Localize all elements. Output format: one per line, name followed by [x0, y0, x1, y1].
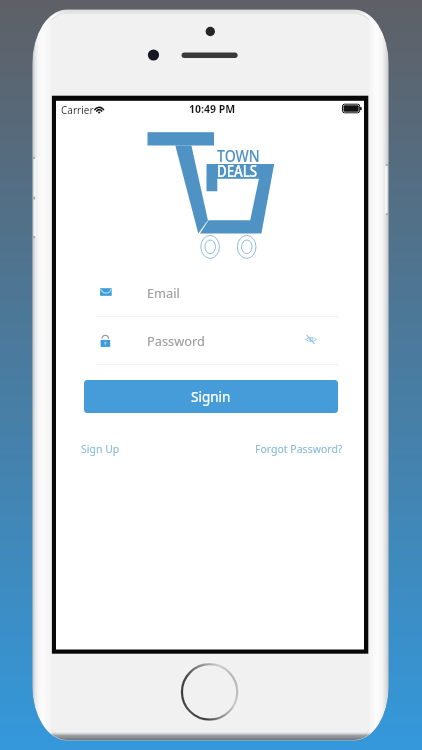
- staticText: Password: [147, 332, 205, 349]
- staticText: 10:49 PM: [58, 102, 366, 116]
- staticText: Signin: [191, 388, 231, 406]
- staticText: Carrier: [61, 103, 94, 117]
- staticText: Forgot Password?: [255, 442, 343, 456]
- staticText: Sign Up: [81, 442, 120, 456]
- button[interactable]: Signin: [84, 380, 338, 413]
- button[interactable]: Password: [99, 326, 338, 354]
- button[interactable]: Show password: [301, 330, 320, 349]
- staticText: Email: [147, 284, 180, 301]
- button[interactable]: Email: [99, 278, 338, 306]
- staticText: DEALS: [217, 159, 258, 182]
- button[interactable]: Sign Up: [81, 442, 120, 456]
- button[interactable]: Forgot Password?: [255, 442, 343, 456]
- staticText: TOWN: [217, 144, 260, 167]
